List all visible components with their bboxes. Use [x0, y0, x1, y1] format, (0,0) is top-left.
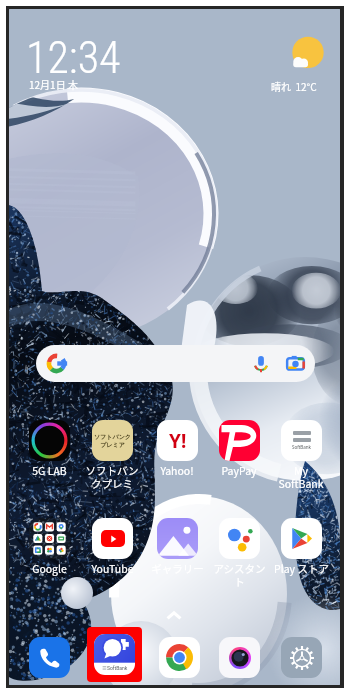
staticText: SoftBank — [292, 444, 311, 450]
button[interactable]: Google Lens — [286, 354, 305, 373]
staticText: Y! — [169, 428, 187, 454]
button[interactable]: 5G LAB — [17, 420, 81, 478]
button[interactable]: Voice search — [36, 345, 315, 382]
button[interactable]: SoftBank — [269, 420, 333, 491]
staticText: Google — [32, 561, 67, 576]
staticText: アシスタン ト — [213, 561, 266, 589]
button[interactable]: アシスタン ト — [207, 518, 271, 589]
staticText: ソフトバンク プレミア — [94, 433, 131, 448]
staticText: PayPay — [221, 463, 257, 478]
staticText: 12:34 — [26, 32, 121, 84]
button[interactable]: SoftBank Messages — [87, 627, 142, 682]
staticText: Yahoo! — [160, 463, 194, 478]
button[interactable]: PayPay — [207, 420, 271, 478]
staticText: Play ストア — [274, 561, 329, 576]
staticText: ソフトバン クプレミ — [85, 463, 139, 491]
button[interactable]: YouTube — [80, 518, 144, 576]
button[interactable]: Chrome — [159, 637, 200, 678]
staticText: 晴れ 12°C — [271, 79, 317, 93]
staticText: ギャラリー — [151, 561, 204, 576]
button[interactable]: Play ストア — [269, 518, 333, 576]
button[interactable]: Y! — [145, 420, 209, 478]
button[interactable]: Phone — [29, 637, 70, 678]
button[interactable]: ソフトバンク プレミア — [80, 420, 144, 491]
staticText: YouTube — [91, 561, 134, 576]
staticText: 5G LAB — [32, 463, 67, 478]
button[interactable]: ギャラリー — [145, 518, 209, 576]
button[interactable]: Camera — [219, 637, 260, 678]
button[interactable]: Settings — [281, 637, 322, 678]
staticText: SoftBank — [107, 665, 128, 671]
button[interactable]: Voice search — [252, 355, 270, 373]
staticText: My SoftBank — [278, 463, 324, 491]
button[interactable]: Google — [17, 518, 81, 576]
staticText: 12月1日 木 — [29, 77, 78, 91]
